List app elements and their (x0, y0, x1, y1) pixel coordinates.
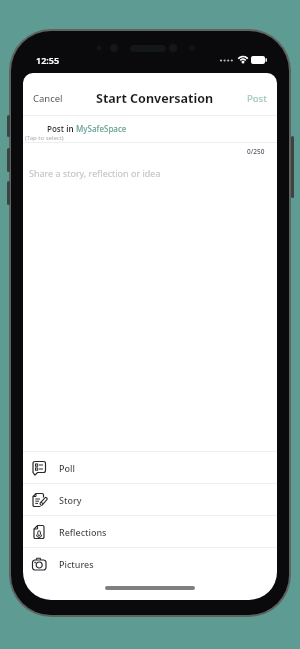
staticText: Reflections (59, 526, 107, 538)
staticText: Share a story, reflection or idea (29, 167, 161, 179)
staticText: 12:55 (36, 54, 60, 66)
staticText: Cancel (33, 92, 63, 105)
staticText: Pictures (59, 558, 94, 570)
staticText: Story (59, 494, 82, 506)
staticText: Post in (47, 123, 76, 134)
staticText: Poll (59, 462, 75, 474)
button[interactable]: Post (247, 92, 267, 105)
staticText: Post (247, 92, 267, 105)
button[interactable]: Pictures (23, 548, 277, 579)
button[interactable]: Story (23, 484, 277, 515)
button[interactable]: Cancel (33, 92, 63, 105)
button[interactable]: Post in (47, 123, 127, 134)
staticText: (Tap to select) (25, 134, 64, 142)
staticText: 0/250 (247, 147, 265, 156)
button[interactable]: Reflections (23, 516, 277, 547)
staticText: MySafeSpace (76, 123, 127, 134)
button[interactable]: Poll (23, 452, 277, 483)
staticText: Start Conversation (96, 90, 214, 107)
